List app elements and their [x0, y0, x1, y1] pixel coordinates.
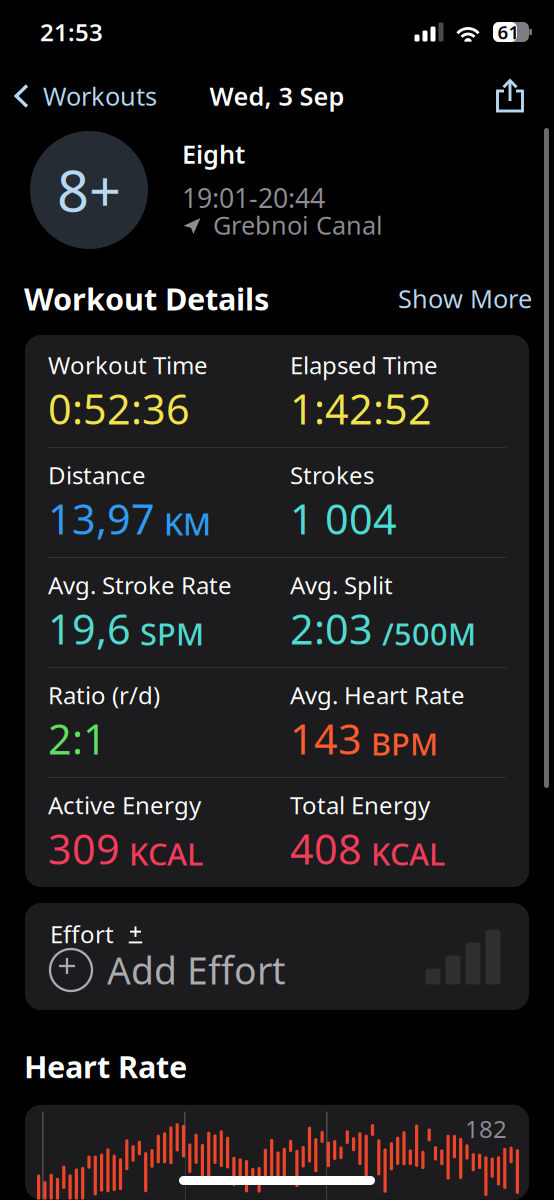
staticText: Active Energy [48, 789, 201, 821]
staticText: Avg. Stroke Rate [48, 569, 232, 601]
staticText: Total Energy [290, 789, 430, 821]
staticText: Effort [50, 918, 114, 950]
staticText: 61 [497, 20, 519, 44]
staticText: 2:1 [48, 711, 107, 766]
button[interactable]: Share [482, 70, 538, 122]
staticText: Avg. Heart Rate [290, 679, 465, 711]
staticText: 8+ [57, 153, 121, 227]
staticText: KCAL [371, 833, 445, 874]
staticText: SPM [140, 613, 204, 654]
staticText: 309 [48, 821, 120, 876]
staticText: 143 [290, 711, 362, 766]
staticText: BPM [371, 723, 438, 764]
staticText: 1:42:52 [290, 381, 432, 436]
staticText: 21:53 [40, 16, 103, 48]
staticText: Elapsed Time [290, 349, 438, 381]
staticText: Distance [48, 459, 146, 491]
staticText: Eight [182, 137, 245, 171]
staticText: Wed, 3 Sep [209, 79, 344, 113]
staticText: Strokes [290, 459, 374, 491]
button[interactable]: Workouts [0, 69, 165, 123]
staticText: 0:52:36 [48, 381, 190, 436]
staticText: 1 004 [290, 491, 397, 546]
staticText: Show More [398, 282, 532, 315]
staticText: Grebnoi Canal [213, 208, 383, 242]
staticText: Ratio (r/d) [48, 679, 160, 711]
staticText: Heart Rate [24, 1046, 187, 1087]
staticText: KCAL [129, 833, 203, 874]
staticText: Workout Time [48, 349, 208, 381]
button[interactable]: Effort [25, 903, 529, 1010]
staticText: KM [164, 503, 211, 544]
staticText: 408 [290, 821, 362, 876]
staticText: Workouts [43, 79, 157, 113]
staticText: Workout Details [24, 278, 269, 319]
staticText: Avg. Split [290, 569, 393, 601]
staticText: 2:03 [290, 601, 373, 656]
staticText: Add Effort [107, 945, 285, 995]
staticText: /500M [382, 613, 476, 654]
staticText: 19,6 [48, 601, 131, 656]
staticText: 13,97 [48, 491, 155, 546]
staticText: 19:01-20:44 [182, 180, 325, 215]
button[interactable]: Show More [386, 276, 532, 321]
staticText: 182 [465, 1113, 507, 1145]
